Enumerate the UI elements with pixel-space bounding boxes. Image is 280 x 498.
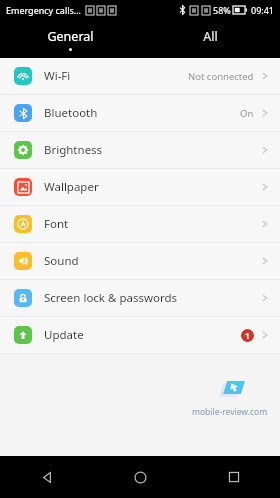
staticText: 1 <box>245 330 250 341</box>
button[interactable]: All <box>140 20 280 58</box>
staticText: mobile-review.com <box>192 406 268 418</box>
button[interactable]: Screen lock & passwords <box>0 280 280 316</box>
staticText: Bluetooth <box>44 105 98 121</box>
button[interactable]: General <box>0 20 140 58</box>
staticText: Sound <box>44 253 79 269</box>
staticText: Update <box>44 327 84 343</box>
button[interactable]: Font <box>0 206 280 242</box>
button[interactable]: Back <box>0 456 94 498</box>
button[interactable]: Update <box>0 317 280 353</box>
staticText: Font <box>44 216 69 232</box>
button[interactable]: Sound <box>0 243 280 279</box>
staticText: Wallpaper <box>44 179 99 195</box>
staticText: Wi-Fi <box>44 68 71 84</box>
button[interactable]: Wallpaper <box>0 169 280 205</box>
staticText: All <box>203 28 218 45</box>
staticText: Emergency calls… <box>6 4 81 16</box>
staticText: Not connected <box>188 70 254 83</box>
button[interactable]: Wi-Fi <box>0 58 280 94</box>
button[interactable]: Bluetooth <box>0 95 280 131</box>
staticText: General <box>47 28 94 45</box>
staticText: Screen lock & passwords <box>44 290 178 306</box>
staticText: 58% <box>213 4 231 16</box>
button[interactable]: Recents <box>187 456 280 498</box>
button[interactable]: Home <box>94 456 187 498</box>
staticText: Brightness <box>44 142 103 158</box>
button[interactable]: Brightness <box>0 132 280 168</box>
staticText: 09:41 <box>251 4 275 16</box>
staticText: On <box>240 107 254 120</box>
